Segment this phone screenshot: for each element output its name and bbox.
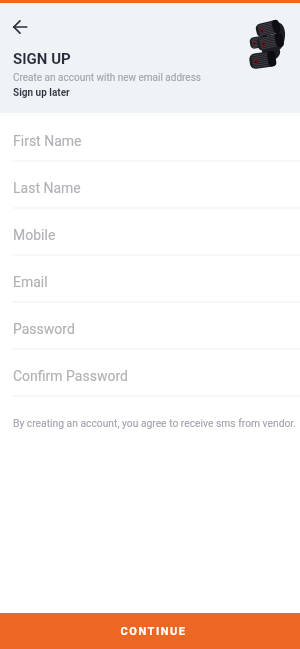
button[interactable]: Last Name — [0, 162, 300, 209]
staticText: CONTINUE — [120, 625, 187, 638]
staticText: Confirm Password — [13, 368, 128, 384]
button[interactable]: First Name — [0, 113, 300, 162]
staticText: Email — [13, 274, 48, 290]
staticText: Password — [13, 321, 75, 337]
button[interactable]: Mobile — [0, 209, 300, 256]
staticText: Last Name — [13, 180, 81, 196]
staticText: Create an account with new email address — [13, 72, 201, 84]
staticText: First Name — [13, 133, 82, 149]
button[interactable]: Back — [6, 13, 34, 41]
staticText: Mobile — [13, 227, 56, 243]
button[interactable]: CONTINUE — [0, 613, 300, 649]
button[interactable]: Password — [0, 303, 300, 350]
staticText: By creating an account, you agree to rec… — [13, 417, 296, 429]
button[interactable]: Email — [0, 256, 300, 303]
button[interactable]: Confirm Password — [0, 350, 300, 397]
button[interactable]: Sign up later — [13, 87, 76, 103]
staticText: SIGN UP — [13, 50, 71, 68]
